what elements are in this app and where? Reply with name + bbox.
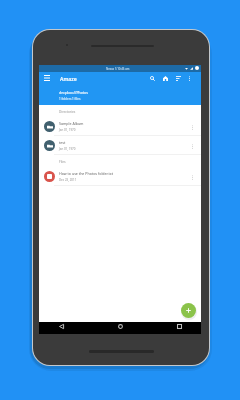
button[interactable]: Home (114, 322, 158, 334)
staticText: 1 folders 1 files (59, 97, 81, 101)
button[interactable]: Menu (41, 72, 53, 84)
button[interactable]: More (186, 121, 198, 133)
staticText: Nexus 5 10:46 am (106, 67, 130, 71)
button[interactable]: Sample Album (39, 117, 201, 136)
staticText: Amaze (60, 75, 77, 82)
staticText: Jan 01, 1970 (59, 128, 76, 132)
staticText: Files (59, 160, 66, 164)
staticText: Sample Album (59, 121, 84, 126)
button[interactable]: Search (146, 72, 158, 84)
button[interactable]: Recents (172, 322, 221, 334)
button[interactable]: More (186, 171, 198, 183)
button[interactable]: More (186, 140, 198, 152)
staticText: How to use the Photos folder.txt (59, 171, 113, 176)
staticText: test (59, 140, 66, 145)
button[interactable]: test (39, 136, 201, 155)
staticText: Jan 01, 1970 (59, 147, 76, 151)
button[interactable]: Sort (172, 72, 184, 84)
staticText: Directories (59, 110, 76, 114)
button[interactable]: Back (55, 322, 113, 334)
button[interactable]: Home (159, 72, 171, 84)
staticText: Dec 23, 2011 (59, 178, 77, 182)
button[interactable]: Add (181, 303, 196, 318)
staticText: dropbox://Photos (59, 90, 88, 95)
button[interactable]: How to use the Photos folder.txt (39, 167, 201, 186)
button[interactable]: More options (183, 72, 195, 84)
